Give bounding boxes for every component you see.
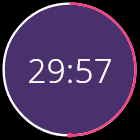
button[interactable]: 29:57 <box>6 6 134 134</box>
staticText: 29:57 <box>27 47 113 92</box>
